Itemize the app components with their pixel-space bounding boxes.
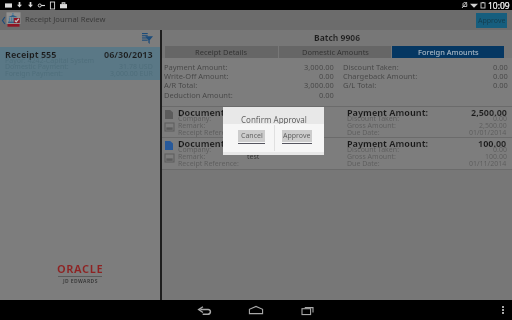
staticText: 01/01/2014 bbox=[469, 128, 507, 138]
button[interactable]: Recent apps bbox=[296, 303, 318, 317]
staticText: 0.00 bbox=[493, 80, 508, 90]
staticText: 0.00 bbox=[493, 145, 507, 155]
staticText: Discount Taken: bbox=[347, 114, 400, 124]
staticText: Chargeback Amount: bbox=[343, 71, 418, 81]
staticText: Receipt Reference: bbox=[178, 159, 239, 169]
staticText: 2,500.00 bbox=[479, 121, 507, 131]
staticText: Document: bbox=[178, 106, 228, 118]
staticText: Approve bbox=[478, 16, 506, 26]
button[interactable]: More options bbox=[497, 304, 509, 316]
staticText: Approve bbox=[283, 131, 311, 141]
staticText: Gross Amount: bbox=[347, 152, 396, 162]
button[interactable]: Document: bbox=[162, 106, 512, 138]
staticText: Remark: bbox=[178, 121, 206, 131]
staticText: Company: bbox=[178, 145, 212, 155]
button[interactable]: Filter bbox=[141, 32, 154, 45]
staticText: 01/11/2014 bbox=[469, 159, 507, 169]
button[interactable]: Approve bbox=[476, 13, 507, 28]
staticText: Discount Taken: bbox=[347, 145, 400, 155]
button[interactable]: JD Edwards app icon bbox=[6, 12, 21, 27]
staticText: Due Date: bbox=[347, 159, 380, 169]
staticText: Payment Amount: bbox=[164, 62, 228, 72]
button[interactable]: Approve bbox=[282, 130, 312, 142]
staticText: 100.00 bbox=[485, 152, 507, 162]
staticText: Write-Off Amount: bbox=[164, 71, 229, 81]
staticText: 3,000.00 bbox=[304, 80, 334, 90]
staticText: 0.00 bbox=[493, 71, 508, 81]
staticText: Payment Amount: bbox=[347, 106, 429, 118]
staticText: 10:09 bbox=[488, 0, 510, 10]
staticText: Foreign Amounts bbox=[418, 47, 479, 57]
staticText: Batch 9906 bbox=[314, 32, 361, 44]
button[interactable]: Back bbox=[0, 10, 7, 30]
staticText: Receipt Reference: bbox=[178, 128, 239, 138]
staticText: Due Date: bbox=[347, 128, 380, 138]
button[interactable]: Receipt 555 bbox=[0, 47, 160, 80]
staticText: Domestic Payment: bbox=[5, 62, 69, 72]
button[interactable]: Receipt Details bbox=[165, 46, 278, 58]
staticText: ORACLE bbox=[57, 261, 104, 276]
staticText: 0.00 bbox=[493, 62, 508, 72]
button[interactable]: Back bbox=[193, 303, 215, 317]
staticText: 0.00 bbox=[319, 71, 334, 81]
staticText: G/L Total: bbox=[343, 80, 377, 90]
staticText: Document: bbox=[178, 137, 228, 149]
staticText: 100.00 bbox=[478, 137, 507, 149]
staticText: Payor: 4242-Capital System bbox=[5, 56, 95, 66]
staticText: Confirm Approval bbox=[241, 114, 307, 125]
staticText: test bbox=[247, 152, 260, 162]
staticText: Gross Amount: bbox=[347, 121, 396, 131]
staticText: Cancel bbox=[241, 131, 263, 141]
button[interactable]: Domestic Amounts bbox=[279, 46, 391, 58]
staticText: Payment Amount: bbox=[347, 137, 429, 149]
button[interactable]: Cancel bbox=[238, 130, 265, 142]
staticText: 0.00 bbox=[319, 90, 334, 100]
staticText: Deduction Amount: bbox=[164, 90, 233, 100]
button[interactable]: Document: bbox=[162, 137, 512, 169]
staticText: Receipt 555 bbox=[5, 48, 57, 60]
staticText: JD EDWARDS bbox=[63, 278, 98, 285]
staticText: Domestic Amounts bbox=[302, 47, 369, 57]
staticText: A/R Total: bbox=[164, 80, 198, 90]
staticText: Remark: bbox=[178, 152, 206, 162]
staticText: Discount Taken: bbox=[343, 62, 399, 72]
staticText: 3,000.00 bbox=[304, 62, 334, 72]
button[interactable]: Foreign Amounts bbox=[392, 46, 504, 58]
staticText: Receipt Journal Review bbox=[25, 14, 106, 24]
staticText: 2,500.00 bbox=[471, 106, 507, 118]
staticText: Company: bbox=[178, 114, 212, 124]
staticText: 0.00 bbox=[493, 114, 507, 124]
button[interactable]: Home bbox=[245, 303, 267, 317]
staticText: 06/30/2013 bbox=[104, 48, 153, 60]
staticText: Receipt Details bbox=[195, 47, 248, 57]
